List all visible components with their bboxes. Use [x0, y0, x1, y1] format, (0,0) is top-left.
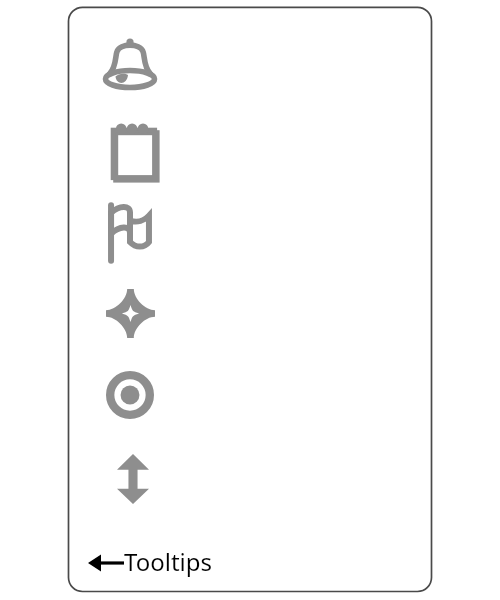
- button[interactable]: Target: [106, 371, 154, 419]
- button[interactable]: Notifications: [104, 38, 156, 90]
- button[interactable]: Sparkle: [106, 289, 155, 338]
- button[interactable]: Resize: [117, 454, 149, 504]
- button[interactable]: Tooltips: [88, 545, 213, 578]
- staticText: Tooltips: [124, 545, 213, 578]
- button[interactable]: Flag: [106, 202, 154, 263]
- button[interactable]: Notes: [108, 121, 160, 181]
